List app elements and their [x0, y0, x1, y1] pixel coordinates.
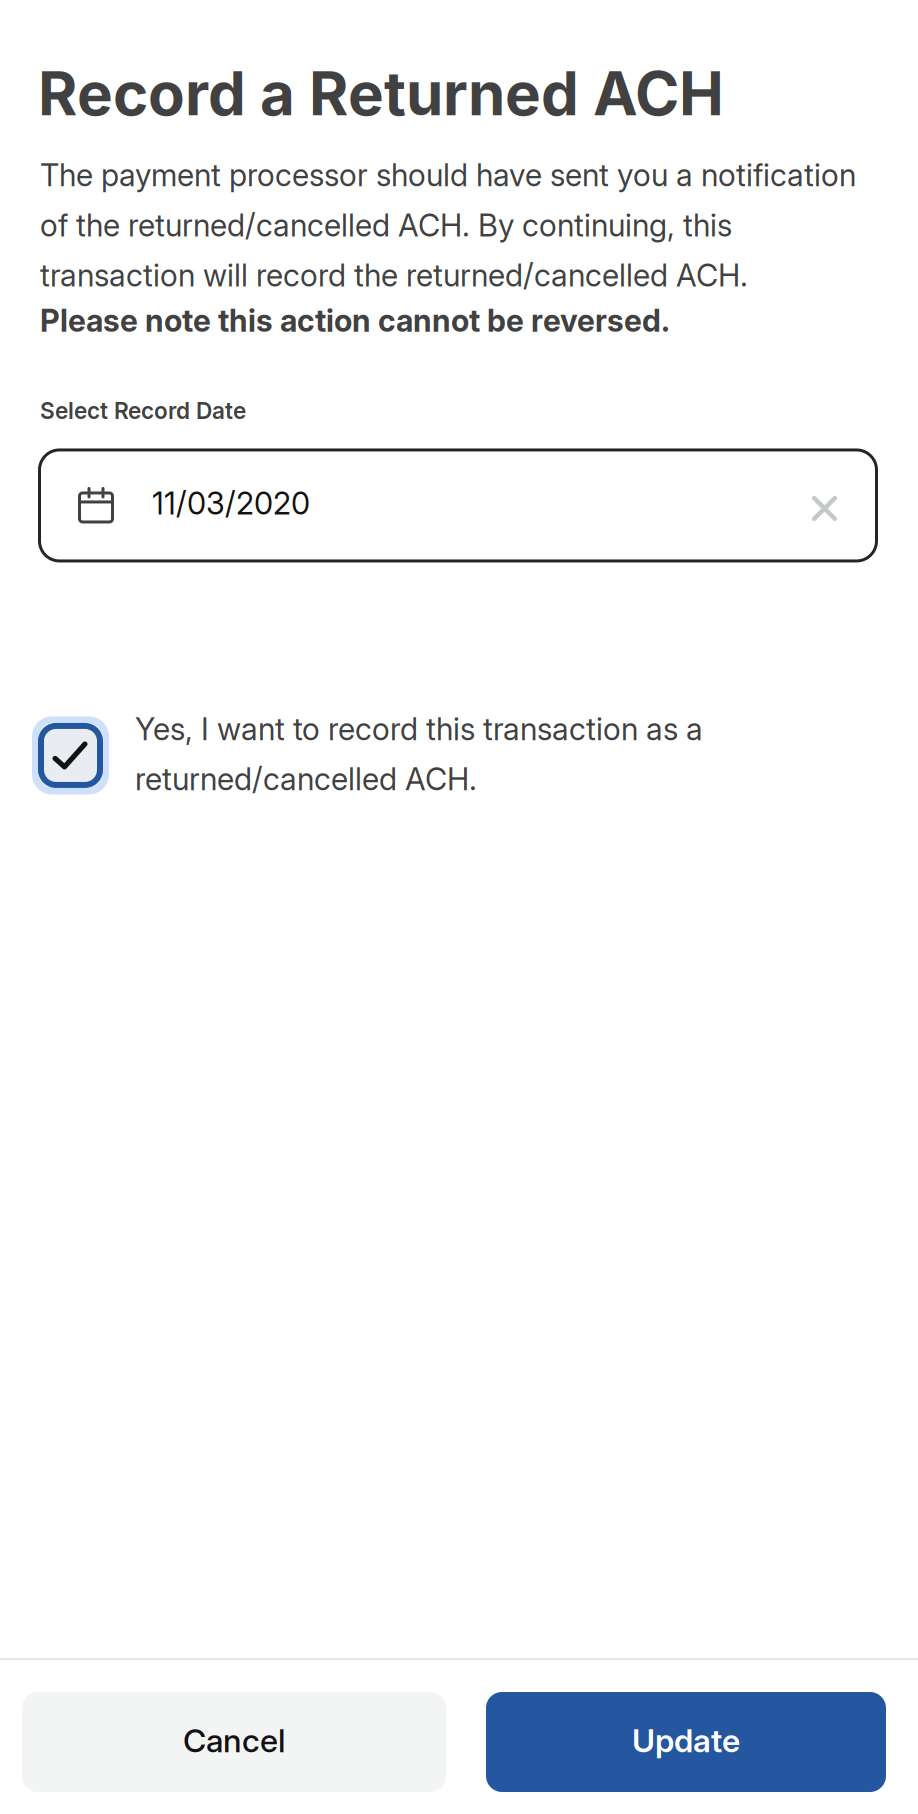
button[interactable]: Update — [486, 1692, 886, 1792]
button[interactable]: Yes, I want to record this transaction a… — [0, 707, 918, 798]
staticText: Please note this action cannot be revers… — [40, 302, 670, 339]
staticText: Select Record Date — [40, 397, 246, 424]
staticText: The payment processor should have sent y… — [40, 157, 856, 294]
staticText: Yes, I want to record this transaction a… — [135, 710, 703, 798]
button[interactable]: Cancel — [22, 1692, 446, 1792]
staticText: Update — [632, 1721, 740, 1760]
staticText: Record a Returned ACH — [38, 57, 724, 130]
button[interactable]: Clear date — [782, 456, 878, 555]
button[interactable]: 11/03/2020 — [38, 448, 878, 562]
staticText: Cancel — [183, 1721, 285, 1760]
staticText: 11/03/2020 — [152, 485, 310, 522]
